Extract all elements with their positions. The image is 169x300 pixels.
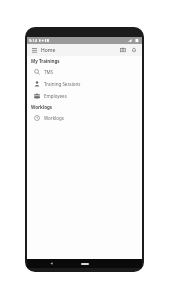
button[interactable]: TMS <box>27 66 142 78</box>
button[interactable]: Home <box>77 260 93 268</box>
button[interactable]: Open navigation menu <box>30 46 39 55</box>
staticText: My Trainings <box>31 58 60 64</box>
staticText: TMS <box>44 69 54 75</box>
button[interactable]: Worklogs <box>27 112 142 124</box>
button[interactable]: Camera <box>118 45 128 55</box>
button[interactable]: Training Sessions <box>27 78 142 90</box>
staticText: Employees <box>44 93 67 99</box>
button[interactable]: Back <box>45 259 57 268</box>
staticText: Worklogs <box>31 104 53 110</box>
staticText: Worklogs <box>44 115 64 121</box>
button[interactable]: Employees <box>27 90 142 102</box>
button[interactable]: Notifications <box>129 45 139 55</box>
staticText: Training Sessions <box>44 81 81 87</box>
staticText: 9:14 <box>29 38 37 43</box>
staticText: Home <box>41 47 56 54</box>
